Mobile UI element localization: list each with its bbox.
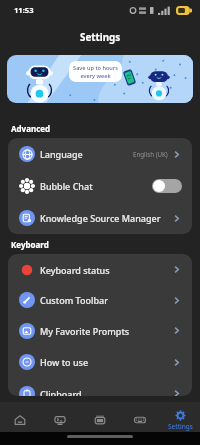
staticText: Clipboard — [40, 388, 82, 396]
button[interactable]: Keyboard — [120, 402, 160, 432]
staticText: Knowledge Source Manager — [40, 212, 161, 224]
staticText: English (UK) — [133, 150, 168, 158]
button[interactable]: Bubble Chat — [8, 170, 192, 202]
button[interactable]: Settings — [160, 402, 200, 432]
button[interactable]: Custom Toolbar — [8, 285, 192, 315]
button[interactable]: Save up to hours every week — [7, 55, 193, 103]
staticText: Custom Toolbar — [40, 294, 108, 306]
staticText: 11:53 — [14, 5, 34, 15]
button[interactable]: Language — [8, 138, 192, 170]
staticText: Keyboard status — [40, 264, 110, 276]
button[interactable]: Keyboard status — [8, 254, 192, 285]
button[interactable]: Clipboard — [8, 378, 192, 396]
staticText: Save up to hours every week — [73, 64, 118, 79]
button[interactable]: How to use — [8, 346, 192, 378]
staticText: Keyboard — [11, 239, 49, 250]
button[interactable]: Home — [0, 402, 40, 432]
staticText: Bubble Chat — [40, 180, 93, 192]
staticText: My Favorite Prompts — [40, 325, 130, 337]
staticText: Settings — [168, 422, 193, 431]
staticText: Language — [40, 148, 83, 160]
staticText: Settings — [80, 31, 121, 44]
button[interactable]: Assistant — [80, 402, 120, 432]
button[interactable]: My Favorite Prompts — [8, 315, 192, 346]
button[interactable]: Knowledge Source Manager — [8, 202, 192, 234]
staticText: How to use — [40, 356, 89, 368]
staticText: Advanced — [11, 123, 51, 134]
button[interactable]: Chat — [40, 402, 80, 432]
